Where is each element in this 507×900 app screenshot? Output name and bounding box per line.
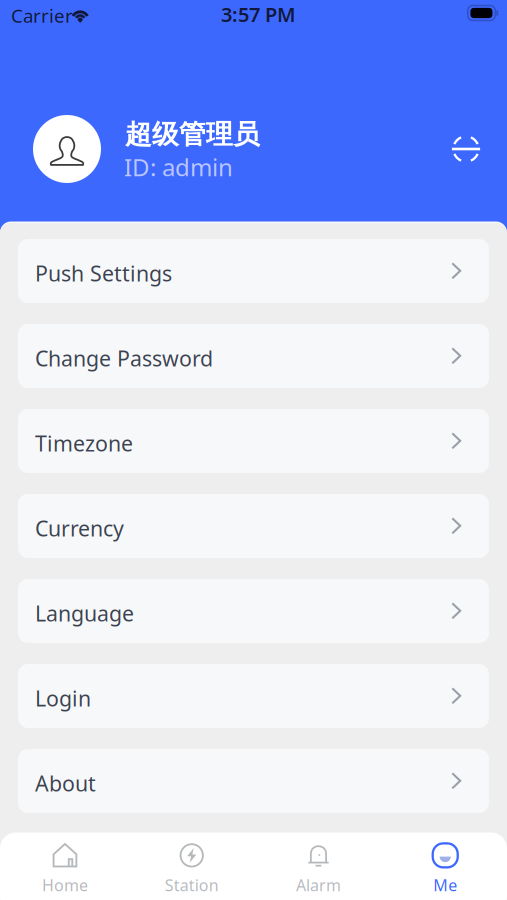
staticText: Carrier	[11, 3, 73, 28]
staticText: Home	[42, 874, 88, 896]
staticText: Currency	[35, 514, 124, 542]
button[interactable]: Language	[18, 579, 489, 643]
staticText: 超级管理员	[125, 118, 260, 151]
staticText: About	[35, 769, 96, 797]
button[interactable]: About	[18, 749, 489, 813]
button[interactable]: Login	[18, 664, 489, 728]
button[interactable]: Change Password	[18, 324, 489, 388]
staticText: Me	[433, 874, 457, 896]
staticText: ID: admin	[124, 151, 233, 183]
button[interactable]: Station	[128, 843, 255, 895]
button[interactable]: Currency	[18, 494, 489, 558]
button[interactable]: Alarm	[255, 843, 382, 895]
staticText: Push Settings	[35, 259, 172, 287]
staticText: Alarm	[296, 874, 341, 896]
staticText: Change Password	[35, 344, 213, 372]
button[interactable]: Me	[382, 843, 507, 895]
button[interactable]: Scan QR code	[443, 126, 489, 172]
staticText: Station	[165, 874, 219, 896]
staticText: 3:57 PM	[221, 1, 296, 28]
button[interactable]: Home	[2, 843, 128, 895]
staticText: Login	[35, 684, 91, 712]
staticText: Language	[35, 599, 134, 627]
button[interactable]: Push Settings	[18, 239, 489, 303]
button[interactable]: Timezone	[18, 409, 489, 473]
staticText: Timezone	[35, 429, 133, 457]
